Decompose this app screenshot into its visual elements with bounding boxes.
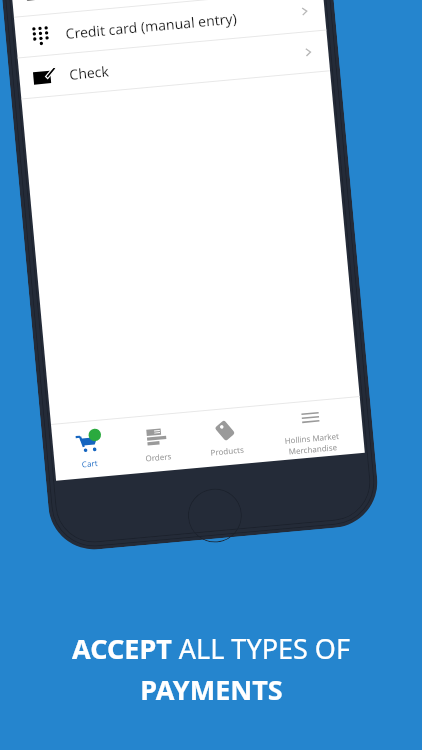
button[interactable]: Credit card (10, 0, 323, 18)
staticText: Orders (145, 450, 172, 464)
staticText: Check (68, 61, 110, 84)
button[interactable]: Hollins Market Merchandise (257, 397, 365, 462)
staticText: Products (210, 444, 244, 458)
staticText: PAYMENTS (140, 671, 283, 708)
button[interactable]: Orders (120, 412, 193, 474)
staticText: Cart (81, 457, 98, 469)
staticText: ACCEPT ALL TYPES OF (72, 630, 350, 667)
button[interactable]: Cart (51, 419, 125, 481)
button[interactable]: Check (18, 30, 330, 99)
button[interactable]: Credit card (manual entry) (14, 0, 326, 59)
button[interactable]: Products (188, 406, 262, 468)
staticText: Hollins Market Merchandise (260, 428, 365, 459)
staticText: Credit card (manual entry) (65, 8, 238, 43)
button[interactable]: Home (186, 486, 244, 545)
